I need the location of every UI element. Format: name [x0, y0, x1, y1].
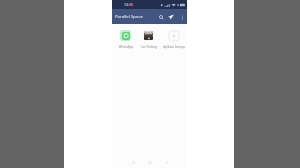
button[interactable]: Aplikasi lainnya — [166, 29, 181, 49]
button[interactable]: Search — [157, 13, 165, 21]
button[interactable]: Car Parking — [141, 29, 156, 49]
button[interactable]: Send — [167, 13, 175, 21]
staticText: Aplikasi lainnya — [161, 45, 187, 49]
staticText: Parallel Space — [115, 13, 143, 19]
staticText: 14:31 — [124, 2, 133, 7]
staticText: WhatsApp — [113, 45, 139, 49]
staticText: Car Parking — [136, 45, 162, 49]
button[interactable]: WhatsApp — [118, 29, 133, 49]
button[interactable]: More options — [178, 13, 186, 21]
button[interactable]: Home — [145, 157, 155, 167]
button[interactable]: Recents — [128, 157, 138, 167]
